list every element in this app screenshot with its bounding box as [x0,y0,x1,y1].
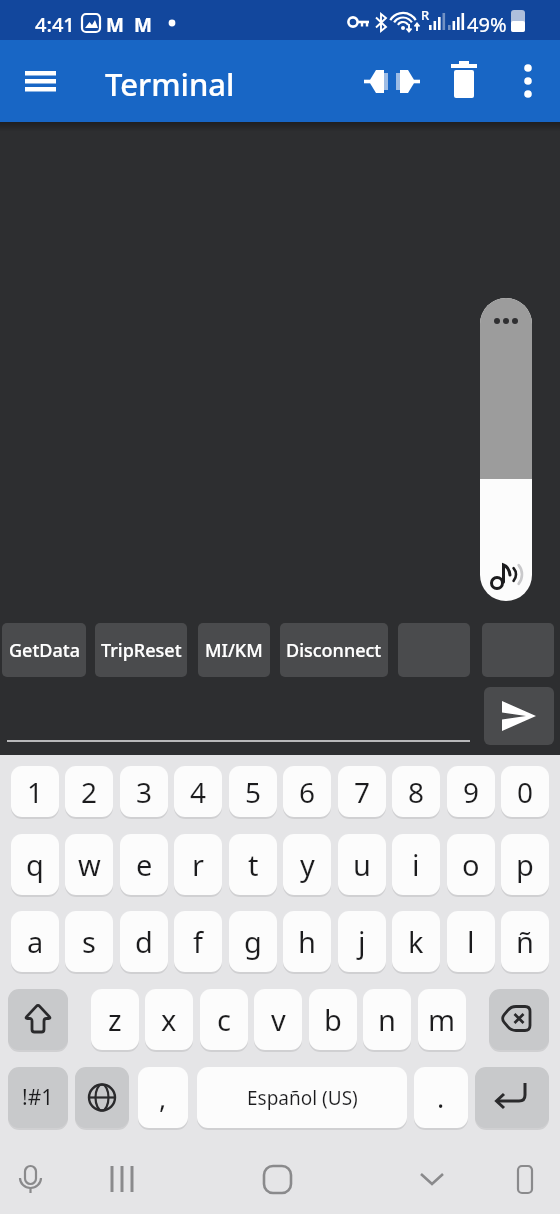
button[interactable] [436,52,492,110]
button[interactable]: h [283,911,331,972]
staticText: u [353,845,371,884]
button[interactable]: l [447,911,495,972]
staticText: 4 [190,773,207,811]
button[interactable]: m [418,989,466,1050]
button[interactable]: e [120,834,168,895]
button[interactable]: a [11,911,59,972]
staticText: q [26,845,44,884]
staticText: , [159,1079,167,1116]
button[interactable]: f [174,911,222,972]
staticText: l [467,922,475,961]
staticText: ñ [516,922,534,961]
staticText: y [300,845,315,884]
button[interactable]: k [392,911,440,972]
button[interactable]: v [254,989,302,1050]
button[interactable] [475,1067,549,1128]
button[interactable] [10,52,70,110]
staticText: R [421,6,430,24]
button[interactable]: Disconnect [280,623,388,677]
button[interactable]: t [229,834,277,895]
button[interactable]: , [138,1067,188,1128]
button[interactable]: x [145,989,193,1050]
button[interactable]: Español (US) [197,1067,407,1128]
staticText: c [217,1000,231,1039]
button[interactable]: z [91,989,139,1050]
button[interactable]: ñ [501,911,549,972]
staticText: k [408,922,424,961]
staticText: 7 [354,773,371,811]
button[interactable]: 5 [229,766,277,817]
button[interactable]: n [363,989,411,1050]
button[interactable]: 7 [338,766,386,817]
button[interactable]: r [174,834,222,895]
button[interactable] [0,1140,560,1214]
staticText: o [462,845,480,884]
button[interactable]: 6 [283,766,331,817]
staticText: h [298,922,316,961]
staticText: 3 [136,773,153,811]
staticText: m [428,1000,456,1039]
staticText: . [437,1079,445,1116]
staticText: !#1 [22,1083,54,1112]
button[interactable]: u [338,834,386,895]
button[interactable] [8,989,68,1050]
button[interactable] [504,52,552,110]
button[interactable]: j [338,911,386,972]
button[interactable]: b [309,989,357,1050]
button[interactable]: 4 [174,766,222,817]
staticText: b [324,1000,342,1039]
button[interactable]: c [200,989,248,1050]
staticText: d [135,922,153,961]
button[interactable]: 9 [447,766,495,817]
button[interactable]: MI/KM [198,623,270,677]
staticText: w [78,845,101,884]
button[interactable]: y [283,834,331,895]
button[interactable]: GetData [2,623,86,677]
button[interactable]: 1 [11,766,59,817]
staticText: t [248,845,259,884]
button[interactable] [362,52,422,110]
staticText: GetData [9,638,80,663]
button[interactable] [75,1067,129,1128]
staticText: Terminal [105,63,235,105]
staticText: v [271,1000,286,1039]
staticText: Español (US) [247,1085,358,1111]
button[interactable] [489,989,549,1050]
staticText: 4:41 [35,11,75,38]
button[interactable]: 0 [501,766,549,817]
button[interactable]: 3 [120,766,168,817]
button[interactable]: s [65,911,113,972]
staticText: 2 [81,773,98,811]
button[interactable]: 8 [392,766,440,817]
staticText: g [244,922,262,961]
button[interactable]: g [229,911,277,972]
button[interactable]: i [392,834,440,895]
staticText: a [27,922,44,961]
button[interactable] [480,298,532,601]
button[interactable]: o [447,834,495,895]
button[interactable]: TripReset [95,623,187,677]
staticText: f [193,922,203,961]
staticText: x [161,1000,177,1039]
staticText: p [516,845,534,884]
button[interactable]: w [65,834,113,895]
staticText: z [108,1000,122,1039]
staticText: 5 [245,773,262,811]
staticText: n [378,1000,396,1039]
button[interactable]: p [501,834,549,895]
button[interactable]: q [11,834,59,895]
button[interactable] [7,690,470,742]
staticText: e [136,845,153,884]
staticText: TripReset [101,638,182,663]
button[interactable]: d [120,911,168,972]
button[interactable]: . [414,1067,468,1128]
button[interactable] [484,687,554,745]
staticText: 49% [467,11,507,38]
staticText: 9 [463,773,480,811]
staticText: 0 [517,773,534,811]
staticText: 6 [299,773,316,811]
button[interactable]: 2 [65,766,113,817]
button[interactable]: !#1 [8,1067,68,1128]
